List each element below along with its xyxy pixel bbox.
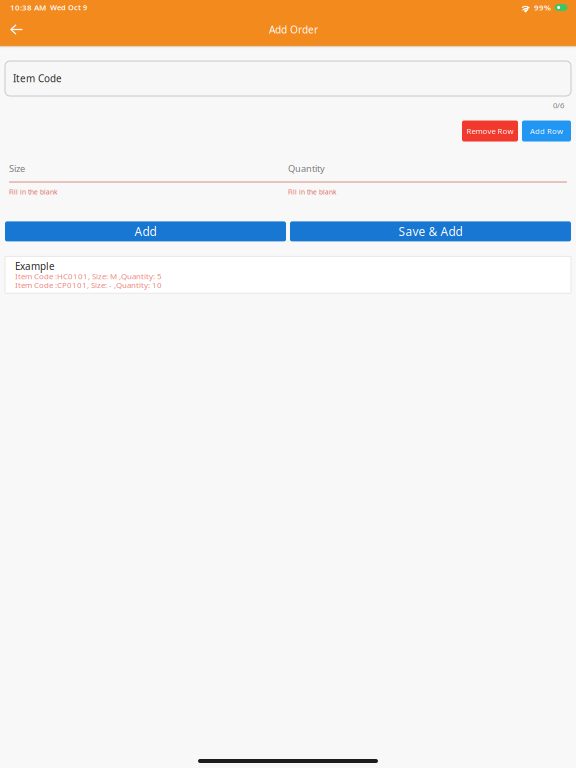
button[interactable]: Back <box>0 15 37 44</box>
staticText: Add Row <box>530 126 563 136</box>
staticText: Quantity <box>288 162 325 175</box>
staticText: 99% <box>534 2 551 13</box>
button[interactable]: Add <box>5 221 286 241</box>
button[interactable]: Save & Add <box>290 221 571 241</box>
staticText: 0/6 <box>553 100 564 110</box>
staticText: Item Code :CP0101, Size: - ,Quantity: 10 <box>15 280 162 290</box>
staticText: Wed Oct 9 <box>50 2 87 12</box>
staticText: 10:38 AM <box>10 2 46 13</box>
staticText: Save & Add <box>398 223 462 240</box>
staticText: Item Code <box>13 72 62 85</box>
staticText: Size <box>9 162 25 175</box>
staticText: Add Order <box>269 23 318 36</box>
staticText: Example <box>15 259 55 273</box>
staticText: Item Code :HC0101, Size: M ,Quantity: 5 <box>15 271 162 282</box>
staticText: Fill in the blank <box>9 187 57 196</box>
button[interactable]: Remove Row <box>462 120 518 141</box>
staticText: Remove Row <box>466 126 513 136</box>
staticText: Fill in the blank <box>288 187 336 196</box>
button[interactable]: Add Row <box>522 120 571 141</box>
staticText: Add <box>134 223 156 240</box>
